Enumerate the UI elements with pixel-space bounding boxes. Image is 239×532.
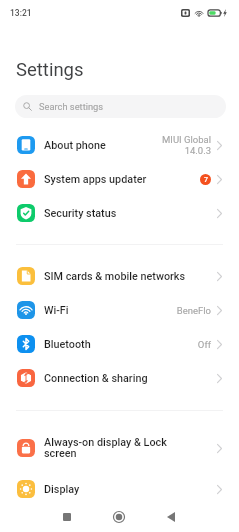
staticText: Always-on display & Lock screen [44,436,174,460]
staticText: 7 [204,176,208,184]
button[interactable]: About phone [0,128,239,162]
staticText: MIUI Global 14.0.3 [162,134,211,156]
button[interactable]: Security status [0,196,239,230]
button[interactable]: Back [151,501,191,532]
staticText: BeneFlo [176,305,211,316]
staticText: Search settings [39,101,104,112]
button[interactable]: System apps updater [0,162,239,196]
staticText: Off [197,339,211,350]
staticText: Wi-Fi [44,304,176,317]
button[interactable]: Display [0,472,239,506]
staticText: 13:21 [10,8,32,18]
button[interactable]: Bluetooth [0,327,239,361]
staticText: Security status [44,207,217,220]
staticText: Display [44,483,217,496]
staticText: SIM cards & mobile networks [44,270,217,283]
button[interactable]: Always-on display & Lock screen [0,424,239,472]
button[interactable]: Home [99,501,139,532]
staticText: Bluetooth [44,338,197,351]
staticText: System apps updater [44,173,200,186]
staticText: Connection & sharing [44,372,217,385]
button[interactable]: Recents [47,501,87,532]
button[interactable]: Search settings [15,95,226,118]
staticText: About phone [44,139,162,152]
staticText: Settings [16,59,84,81]
button[interactable]: Wi-Fi [0,293,239,327]
button[interactable]: Connection & sharing [0,361,239,395]
button[interactable]: SIM cards & mobile networks [0,259,239,293]
